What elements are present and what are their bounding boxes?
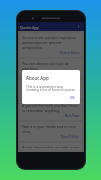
staticText: This is a quotations app, showing a list… (26, 84, 77, 92)
staticText: Fate is in your hands and no one elses. (22, 124, 80, 134)
staticText: - Mark Twain (63, 114, 80, 118)
staticText: - Cicero (70, 93, 80, 97)
staticText: Quotes App (20, 25, 39, 29)
staticText: You can observe a lot just by watching. (22, 61, 80, 71)
staticText: About App (26, 75, 49, 81)
button[interactable]: Genius is one percent inspiration and ni… (20, 33, 82, 57)
button[interactable]: Be the change that you wish to see in th… (20, 143, 82, 150)
button[interactable]: If you tell the truth you don't have to … (20, 101, 82, 120)
staticText: Genius is one percent inspiration and ni… (22, 35, 80, 50)
staticText: A room without books is like a body with… (22, 82, 80, 92)
staticText: OK (70, 96, 75, 100)
staticText: - Byron Pulsifer (59, 135, 80, 139)
button[interactable]: OK (68, 95, 77, 101)
button[interactable]: You can observe a lot just by watching. (20, 59, 82, 78)
staticText: - Thomas Edison (58, 51, 80, 55)
staticText: Be the change that you wish to see in th… (22, 145, 80, 148)
button[interactable]: A room without books is like a body with… (20, 80, 82, 99)
button[interactable]: Fate is in your hands and no one elses. (20, 122, 82, 141)
button[interactable]: More options (75, 23, 82, 30)
staticText: If you tell the truth you don't have to … (22, 103, 80, 113)
